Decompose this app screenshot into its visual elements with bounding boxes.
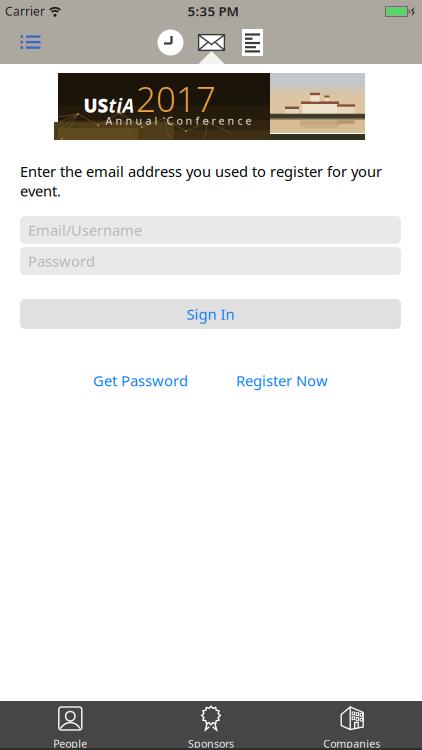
staticText: Companies <box>323 736 380 750</box>
button[interactable]: Get Password <box>93 371 188 390</box>
button[interactable]: Email sign in <box>192 24 230 60</box>
staticText: US <box>83 93 108 118</box>
staticText: Sign In <box>186 304 234 324</box>
staticText: Password <box>28 251 95 271</box>
staticText: People <box>53 736 87 750</box>
button[interactable]: Menu <box>9 24 53 60</box>
staticText: 2017 <box>136 75 216 121</box>
staticText: Register Now <box>236 371 328 390</box>
staticText: tiA <box>108 93 134 118</box>
staticText: 5:35 PM <box>187 2 238 20</box>
button[interactable]: Sign In <box>20 299 401 329</box>
button[interactable]: Documents <box>234 24 270 60</box>
staticText: Email/Username <box>28 220 142 240</box>
staticText: Enter the email address you used to regi… <box>20 161 382 200</box>
button[interactable]: Companies <box>282 701 422 750</box>
staticText: Carrier <box>5 3 45 19</box>
button[interactable]: Sponsors <box>141 701 281 750</box>
button[interactable]: Password <box>20 247 401 275</box>
button[interactable]: People <box>0 701 140 750</box>
button[interactable]: Register Now <box>236 371 328 390</box>
staticText: A n n u a l C o n f e r e n c e <box>105 113 251 128</box>
staticText: Get Password <box>93 371 188 390</box>
staticText: Sponsors <box>188 736 234 750</box>
button[interactable]: Email/Username <box>20 216 401 244</box>
button[interactable]: Recents <box>152 24 188 60</box>
